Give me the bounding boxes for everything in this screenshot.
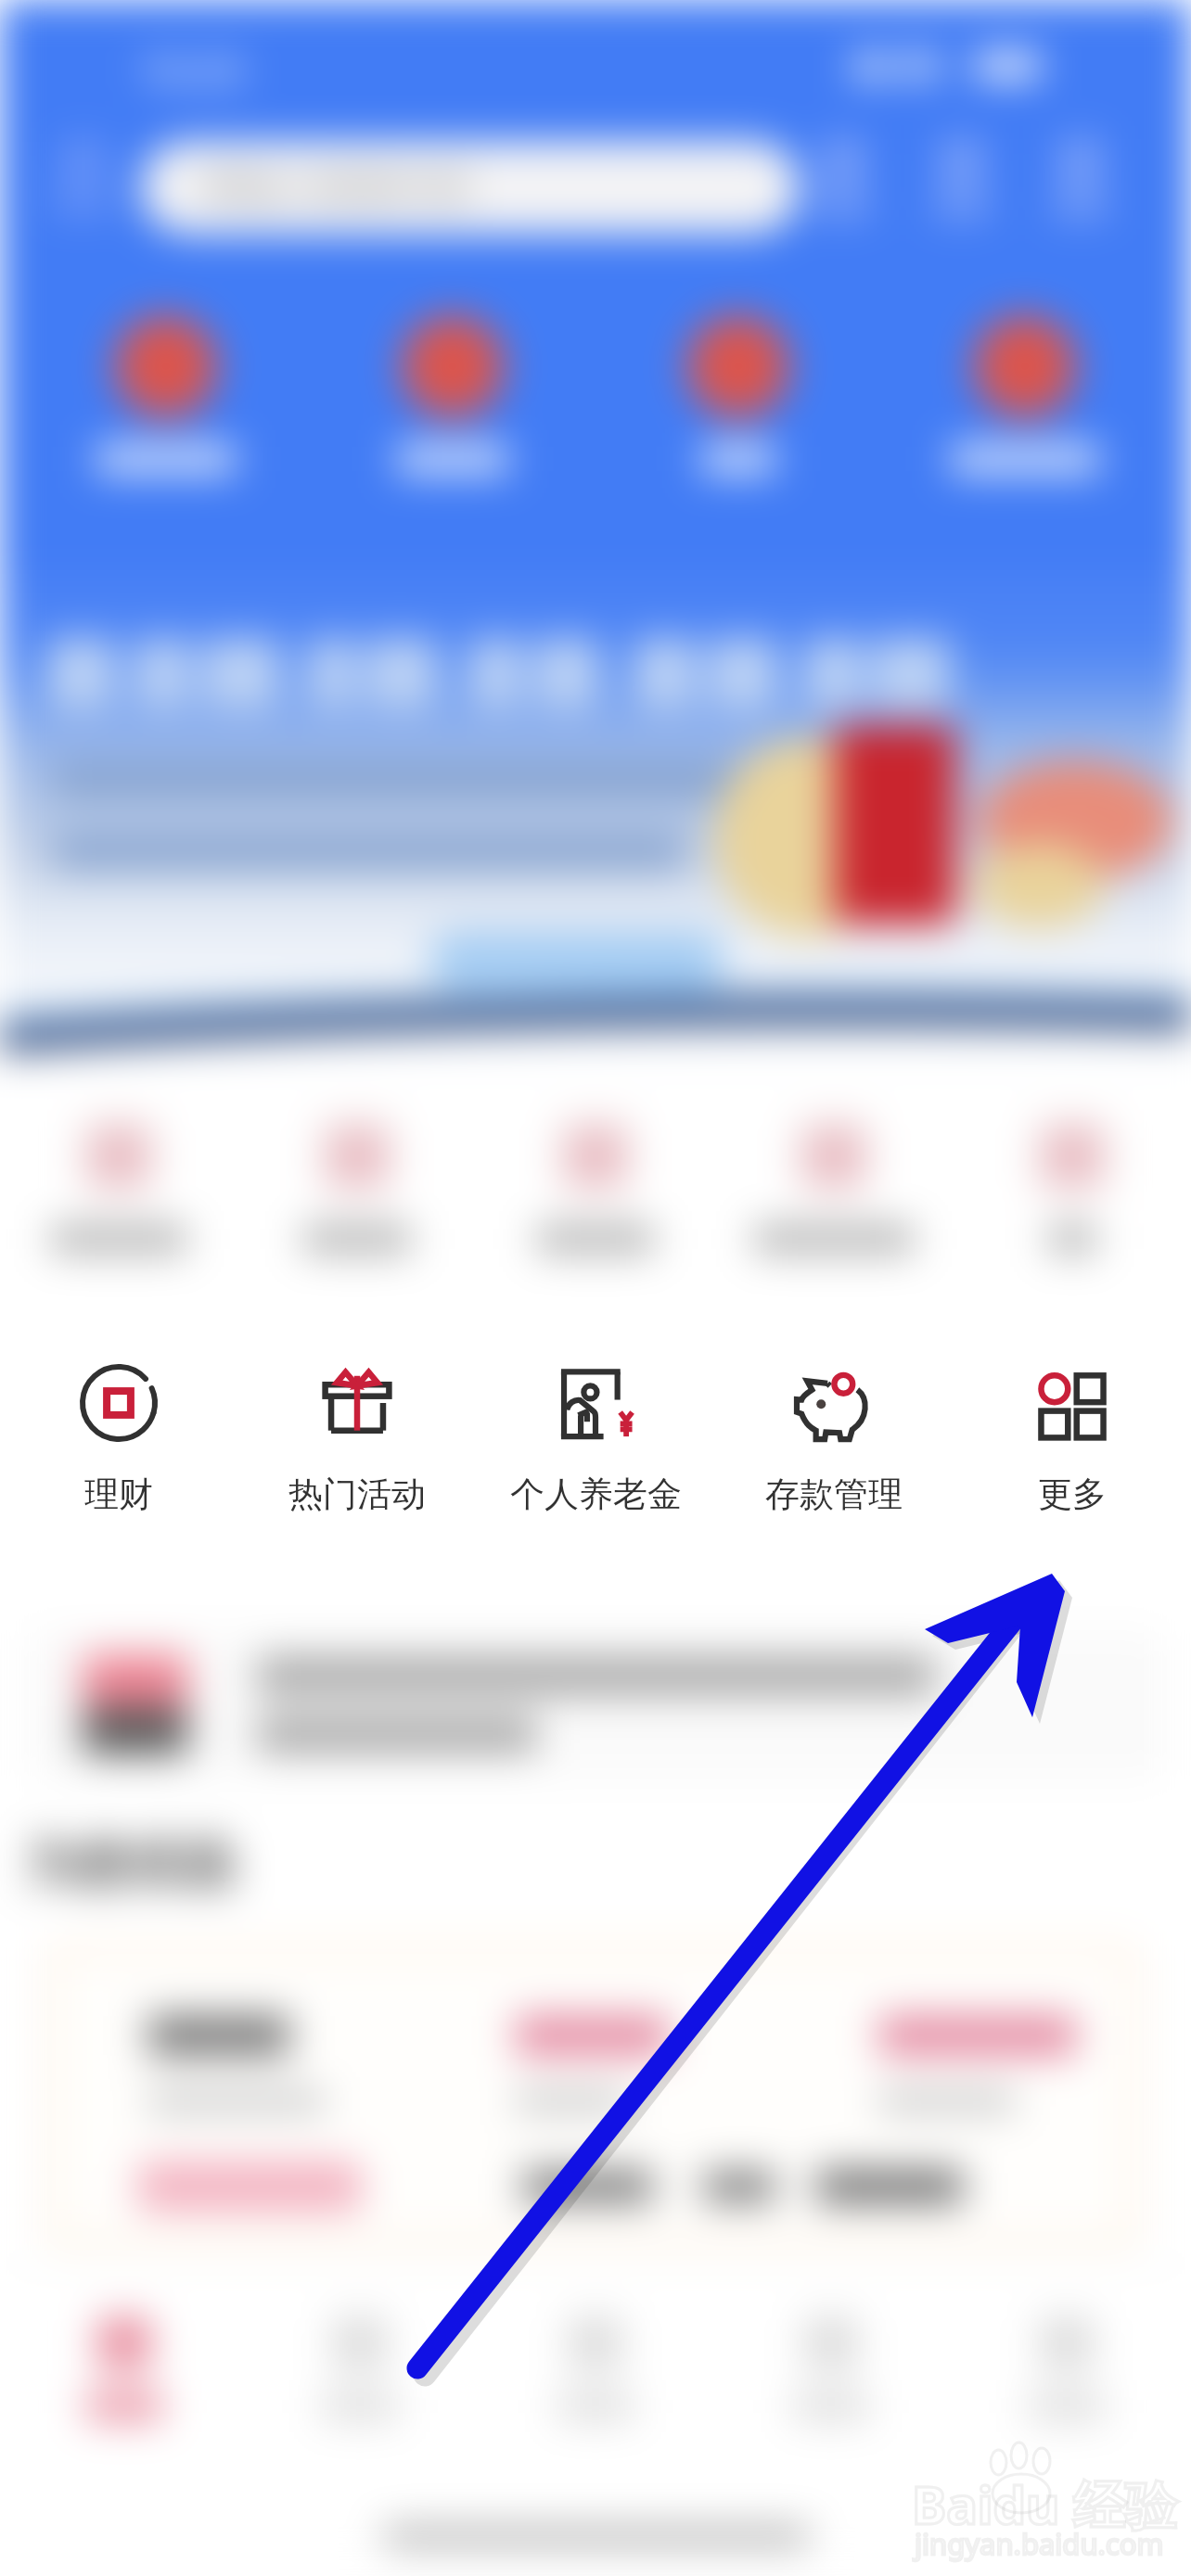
button[interactable]: 存款管理 bbox=[715, 1361, 953, 1528]
button[interactable] bbox=[904, 315, 1146, 475]
button[interactable]: 个人养老金 bbox=[477, 1361, 714, 1528]
staticText: 更多 bbox=[1038, 1473, 1107, 1516]
staticText: 请输入搜索内容 bbox=[200, 163, 473, 212]
staticText: jingyan.baidu.com bbox=[915, 2524, 1164, 2563]
button[interactable] bbox=[715, 1120, 953, 1254]
button[interactable] bbox=[13, 2316, 236, 2420]
button[interactable] bbox=[45, 1943, 1141, 2249]
button[interactable] bbox=[332, 315, 573, 475]
button[interactable]: 理财 bbox=[0, 1361, 237, 1528]
button[interactable]: 热门活动 bbox=[238, 1361, 476, 1528]
button[interactable]: 请输入搜索内容 bbox=[141, 141, 800, 234]
button[interactable] bbox=[618, 315, 859, 475]
button[interactable] bbox=[477, 1120, 714, 1254]
other: 更多 bbox=[1032, 1363, 1112, 1443]
other: 理财 bbox=[79, 1363, 159, 1443]
button[interactable] bbox=[249, 2316, 471, 2420]
other: 热门活动 bbox=[317, 1363, 397, 1443]
button[interactable] bbox=[484, 2316, 707, 2420]
button[interactable] bbox=[0, 1120, 237, 1254]
staticText: 热门活动 bbox=[288, 1473, 426, 1516]
staticText: Baidu 经验 bbox=[912, 2468, 1177, 2539]
other: 存款管理 bbox=[794, 1363, 874, 1443]
button[interactable] bbox=[954, 1120, 1191, 1254]
other: 个人养老金 bbox=[556, 1363, 635, 1443]
staticText: 为您优选 bbox=[26, 1831, 234, 1897]
button[interactable]: 更多 bbox=[954, 1361, 1191, 1528]
button[interactable] bbox=[955, 2316, 1178, 2420]
button[interactable] bbox=[429, 933, 725, 988]
staticText: 10:25 bbox=[139, 42, 244, 90]
staticText: 理财 bbox=[84, 1473, 153, 1516]
button[interactable] bbox=[28, 1630, 1163, 1779]
button[interactable] bbox=[45, 315, 287, 475]
staticText: 存款管理 bbox=[765, 1473, 903, 1516]
button[interactable] bbox=[238, 1120, 476, 1254]
staticText: 个人养老金 bbox=[510, 1473, 682, 1516]
button[interactable] bbox=[720, 2316, 942, 2420]
